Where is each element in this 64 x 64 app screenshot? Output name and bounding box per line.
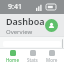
staticText: Dashboard (6, 15, 45, 27)
staticText: 9:41 (8, 2, 22, 12)
staticText: Stats (27, 57, 38, 63)
button[interactable]: More (44, 49, 60, 64)
button[interactable]: Home (4, 49, 21, 64)
staticText: More (46, 57, 58, 63)
staticText: Overview (6, 28, 33, 36)
button[interactable]: Profile (45, 19, 58, 32)
button[interactable]: Stats (25, 49, 40, 64)
staticText: Home (6, 57, 19, 63)
